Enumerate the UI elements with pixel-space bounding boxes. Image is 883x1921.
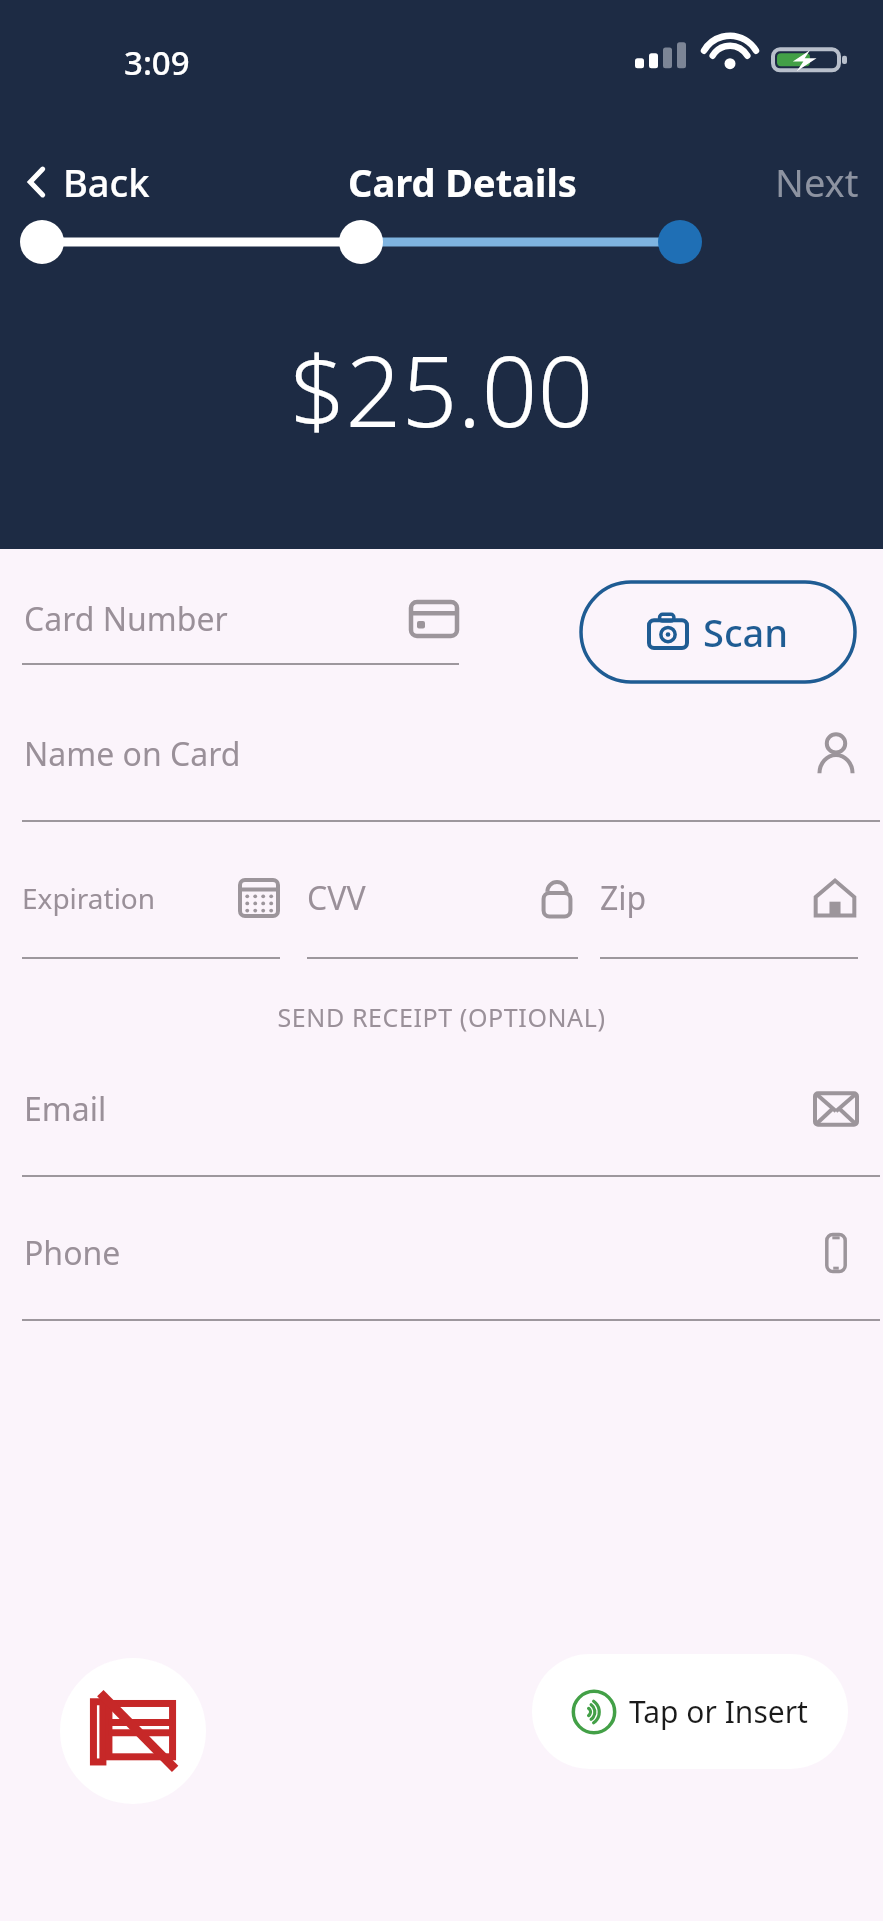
staticText: $25.00 <box>0 322 883 455</box>
button[interactable]: Next <box>775 156 859 208</box>
staticText: Card Number <box>24 597 228 641</box>
staticText: Email <box>24 1087 107 1131</box>
staticText: Next <box>775 156 859 208</box>
button[interactable]: Email <box>0 1063 883 1181</box>
button[interactable]: Name on Card <box>0 708 883 826</box>
button[interactable]: Back <box>24 156 150 208</box>
staticText: Zip <box>600 876 647 920</box>
staticText: 3:09 <box>124 40 190 85</box>
button[interactable]: Expiration <box>22 852 280 944</box>
button[interactable]: Card Number <box>24 575 459 663</box>
staticText: Expiration <box>22 879 156 917</box>
button[interactable]: Tap or Insert <box>532 1654 848 1769</box>
staticText: Name on Card <box>24 732 241 776</box>
button[interactable]: Scan <box>581 582 855 682</box>
staticText: CVV <box>307 876 366 920</box>
staticText: Card Details <box>348 156 577 208</box>
staticText: Back <box>63 156 150 208</box>
button[interactable]: Card not accepted <box>60 1658 206 1804</box>
staticText: Scan <box>703 606 789 658</box>
button[interactable]: CVV <box>307 852 578 944</box>
staticText: Phone <box>24 1231 121 1275</box>
button[interactable]: Phone <box>0 1207 883 1325</box>
staticText: Tap or Insert <box>629 1691 808 1732</box>
staticText: SEND RECEIPT (OPTIONAL) <box>0 1000 883 1034</box>
button[interactable]: Zip <box>600 852 858 944</box>
